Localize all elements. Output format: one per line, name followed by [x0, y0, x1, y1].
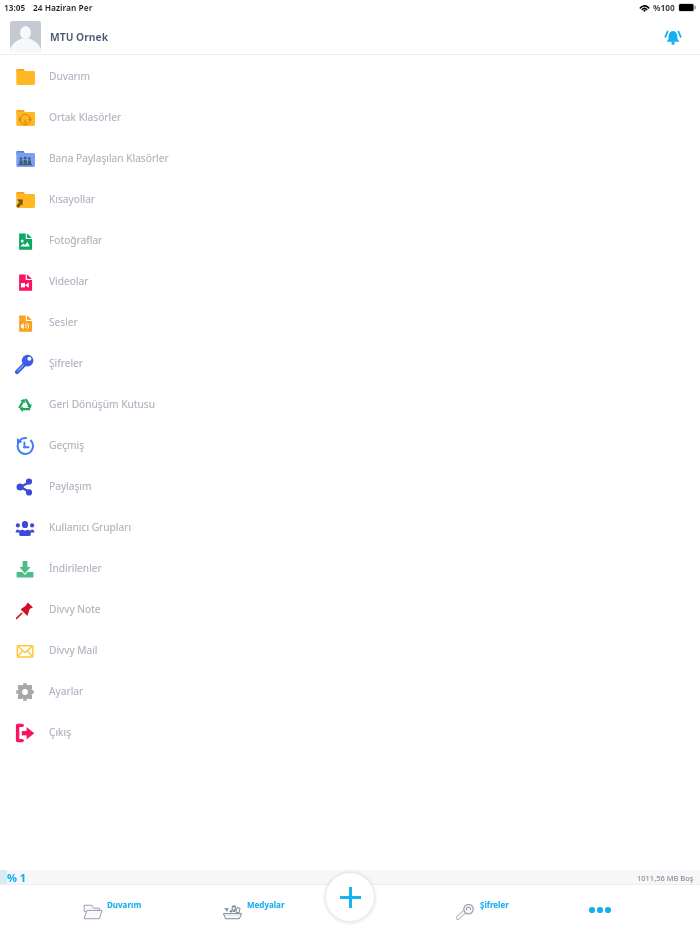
button[interactable]: Geçmiş: [0, 425, 700, 466]
button[interactable]: More: [570, 885, 630, 934]
staticText: Divvy Note: [49, 602, 101, 616]
staticText: İndirilenler: [49, 561, 102, 575]
staticText: Geçmiş: [49, 438, 85, 452]
staticText: Ortak Klasörler: [49, 110, 122, 124]
staticText: Fotoğraflar: [49, 233, 103, 247]
staticText: Geri Dönüşüm Kutusu: [49, 397, 155, 411]
staticText: 24 Haziran Per: [33, 2, 93, 13]
staticText: Videolar: [49, 274, 89, 288]
button[interactable]: Kısayollar: [0, 179, 700, 220]
staticText: Sesler: [49, 315, 78, 329]
button[interactable]: Geri Dönüşüm Kutusu: [0, 384, 700, 425]
button[interactable]: Paylaşım: [0, 466, 700, 507]
button[interactable]: Bana Paylaşılan Klasörler: [0, 138, 700, 179]
button[interactable]: Medyalar: [204, 885, 304, 934]
button[interactable]: Divvy Note: [0, 589, 700, 630]
staticText: Ayarlar: [49, 684, 84, 698]
button[interactable]: Duvarım: [62, 885, 162, 934]
staticText: Duvarım: [107, 899, 142, 910]
button[interactable]: MTU Ornek: [0, 18, 700, 55]
button[interactable]: % 1: [0, 870, 700, 885]
button[interactable]: Notifications: [655, 19, 691, 55]
staticText: Divvy Mail: [49, 643, 98, 657]
staticText: Kısayollar: [49, 192, 96, 206]
button[interactable]: Şifreler: [432, 885, 532, 934]
staticText: Paylaşım: [49, 479, 92, 493]
button[interactable]: Şifreler: [0, 343, 700, 384]
staticText: MTU Ornek: [50, 30, 109, 44]
button[interactable]: Videolar: [0, 261, 700, 302]
staticText: 13:05: [4, 2, 26, 13]
staticText: 1011,56 MB Boş: [637, 873, 694, 883]
staticText: Çıkış: [49, 725, 72, 739]
button[interactable]: Kullanıcı Grupları: [0, 507, 700, 548]
button[interactable]: Duvarım: [0, 56, 700, 97]
staticText: % 1: [7, 870, 27, 885]
button[interactable]: Fotoğraflar: [0, 220, 700, 261]
staticText: Bana Paylaşılan Klasörler: [49, 151, 169, 165]
button[interactable]: Sesler: [0, 302, 700, 343]
button[interactable]: Add: [320, 867, 380, 927]
staticText: Kullanıcı Grupları: [49, 520, 132, 534]
button[interactable]: Divvy Mail: [0, 630, 700, 671]
staticText: Medyalar: [247, 899, 285, 910]
button[interactable]: İndirilenler: [0, 548, 700, 589]
staticText: %100: [653, 2, 675, 13]
staticText: Şifreler: [49, 356, 84, 370]
staticText: Duvarım: [49, 69, 90, 83]
button[interactable]: Ayarlar: [0, 671, 700, 712]
staticText: Şifreler: [480, 899, 509, 910]
button[interactable]: Çıkış: [0, 712, 700, 753]
button[interactable]: Ortak Klasörler: [0, 97, 700, 138]
